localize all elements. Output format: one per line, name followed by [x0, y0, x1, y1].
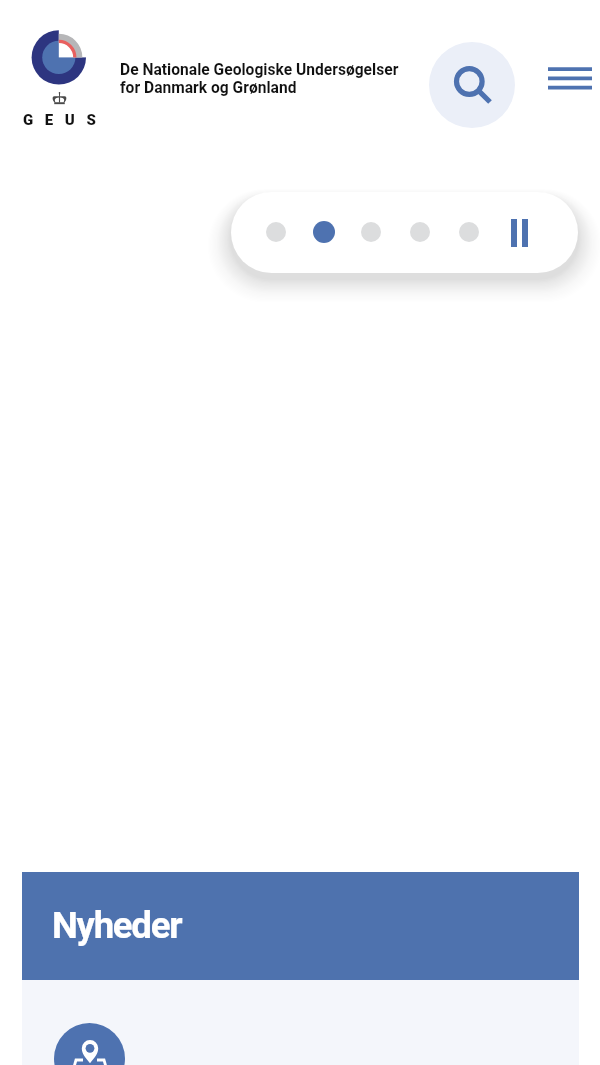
button[interactable]: Go to slide 3: [355, 216, 387, 248]
button[interactable]: Go to slide 1: [260, 216, 292, 248]
button[interactable]: Go to slide 5: [453, 216, 485, 248]
button[interactable]: Pause slideshow: [496, 205, 542, 261]
staticText: Nyheder: [52, 904, 182, 947]
staticText: De Nationale Geologiske Undersøgelser fo…: [120, 61, 399, 97]
button[interactable]: Go to slide 2: [307, 215, 341, 249]
button[interactable]: Go to slide 4: [404, 216, 436, 248]
button[interactable]: Menu: [540, 56, 600, 102]
button[interactable]: GEUS home: [20, 26, 130, 128]
button[interactable]: Search: [429, 42, 515, 128]
button[interactable]: Nyheder: [22, 872, 579, 980]
staticText: GEUS: [23, 111, 108, 129]
button[interactable]: Location news: [54, 1023, 125, 1065]
